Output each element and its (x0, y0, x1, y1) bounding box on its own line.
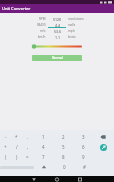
button[interactable]: 5 (53, 142, 73, 152)
button[interactable]: RPM (0, 16, 114, 22)
staticText: = (26, 154, 29, 160)
button[interactable]: RAD/S (0, 22, 114, 28)
staticText: 2 (62, 134, 65, 140)
other: Shift (41, 164, 47, 170)
staticText: , (27, 144, 29, 150)
staticText: m/s (40, 29, 46, 33)
staticText: revolutions (68, 17, 84, 21)
staticText: * (15, 134, 18, 140)
button[interactable]: 1 (33, 132, 53, 142)
staticText: + (4, 144, 7, 150)
staticText: ( (5, 154, 7, 160)
button[interactable]: = (22, 152, 33, 162)
button[interactable]: 9 (73, 152, 93, 162)
staticText: 7 (42, 154, 45, 160)
staticText: 4 (42, 144, 45, 150)
button[interactable]: 8 (53, 152, 73, 162)
button[interactable]: # (74, 162, 94, 172)
button[interactable]: Normal (32, 55, 82, 61)
staticText: mph (68, 29, 75, 33)
staticText: RPM (39, 17, 46, 21)
button[interactable]: km/h (0, 34, 114, 40)
staticText: 0 (63, 164, 66, 170)
staticText: 1 (42, 134, 45, 140)
staticText: 4.4 (55, 23, 60, 28)
staticText: 9 (82, 154, 85, 160)
button[interactable]: 2 (53, 132, 73, 142)
button[interactable]: ( (0, 152, 11, 162)
staticText: RAD/S (37, 23, 46, 27)
button[interactable]: , (22, 142, 33, 152)
button[interactable]: 4 (33, 142, 53, 152)
button[interactable]: 0 (54, 162, 74, 172)
button[interactable]: * (11, 132, 22, 142)
staticText: rad/s (68, 23, 76, 27)
staticText: knots (68, 35, 76, 39)
staticText: 6 (82, 144, 85, 150)
staticText: km/h (38, 35, 46, 39)
staticText: 5120 (53, 17, 62, 22)
button[interactable]: 6 (73, 142, 93, 152)
staticText: ) (16, 154, 18, 160)
staticText: 8 (62, 154, 65, 160)
button[interactable]: - (0, 132, 11, 142)
staticText: Normal (52, 56, 63, 60)
button[interactable]: Recent apps (76, 176, 84, 182)
button[interactable]: / (11, 142, 22, 152)
staticText: # (83, 164, 86, 170)
staticText: - (5, 134, 7, 140)
staticText: . (27, 134, 29, 140)
button[interactable]: Enter (100, 144, 107, 151)
staticText: 5 (62, 144, 65, 150)
button[interactable]: m/s (0, 28, 114, 34)
button[interactable]: Backspace (100, 134, 106, 140)
staticText: Unit Converter (2, 6, 31, 11)
button[interactable]: Back (30, 176, 38, 182)
button[interactable]: 7 (33, 152, 53, 162)
staticText: / (16, 144, 18, 150)
button[interactable]: Shift (34, 162, 54, 172)
button[interactable]: + (0, 142, 11, 152)
staticText: 1.1 (55, 35, 60, 40)
staticText: 53.6 (54, 29, 61, 34)
button[interactable]: . (22, 132, 33, 142)
button[interactable]: ) (11, 152, 22, 162)
button[interactable]: Home (53, 176, 61, 182)
staticText: 3 (82, 134, 85, 140)
button[interactable]: 3 (73, 132, 93, 142)
